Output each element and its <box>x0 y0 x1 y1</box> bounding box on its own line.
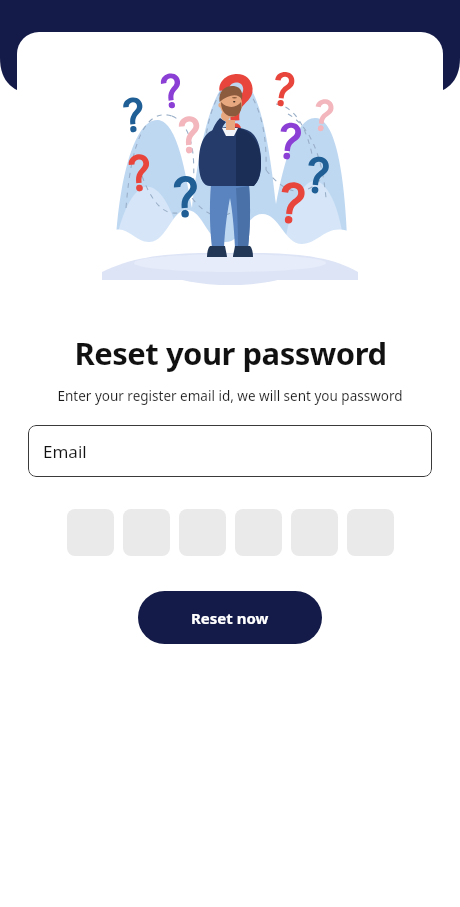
button[interactable]: Code digit 3 <box>179 509 226 556</box>
button[interactable]: Code digit 1 <box>67 509 114 556</box>
button[interactable]: Code digit 5 <box>291 509 338 556</box>
button[interactable]: Code digit 4 <box>235 509 282 556</box>
staticText: Email <box>43 440 87 463</box>
staticText: Reset now <box>191 608 269 628</box>
staticText: Enter your register email id, we will se… <box>57 387 403 405</box>
button[interactable]: Code digit 6 <box>347 509 394 556</box>
staticText: Reset your password <box>74 332 387 374</box>
button[interactable]: Code digit 2 <box>123 509 170 556</box>
button[interactable]: Reset now <box>138 591 322 644</box>
button[interactable]: Email <box>28 425 432 477</box>
